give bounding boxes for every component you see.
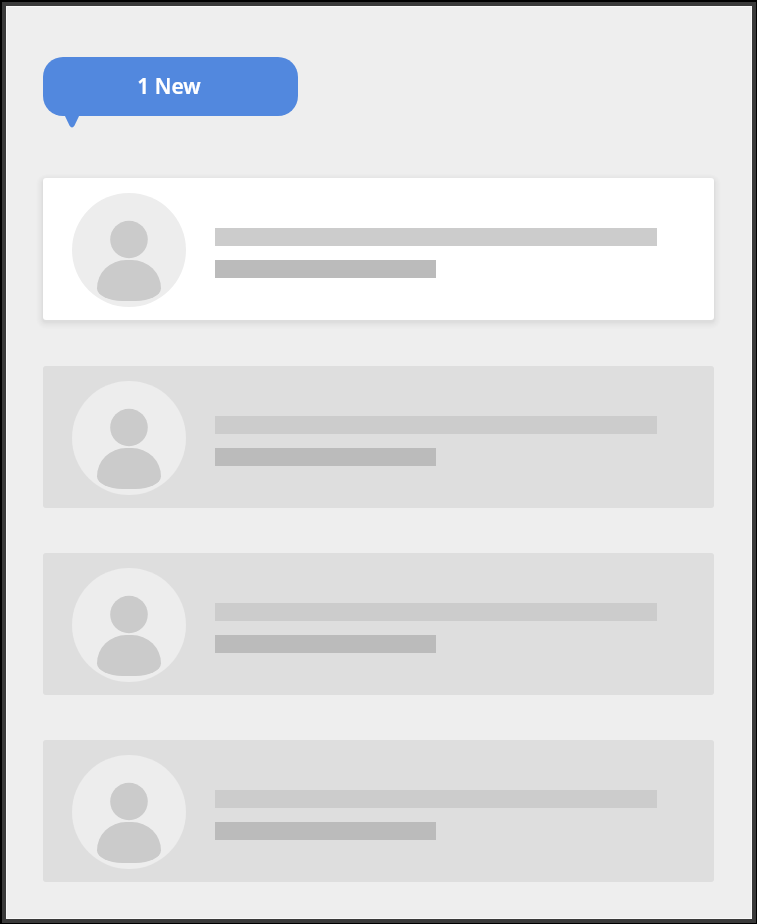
button[interactable]: Conversation [43, 740, 714, 882]
button[interactable]: Conversation [43, 178, 714, 320]
staticText: 1 New [137, 72, 201, 101]
button[interactable]: Conversation [43, 553, 714, 695]
button[interactable]: 1 New [43, 57, 298, 129]
button[interactable]: Conversation [43, 366, 714, 508]
